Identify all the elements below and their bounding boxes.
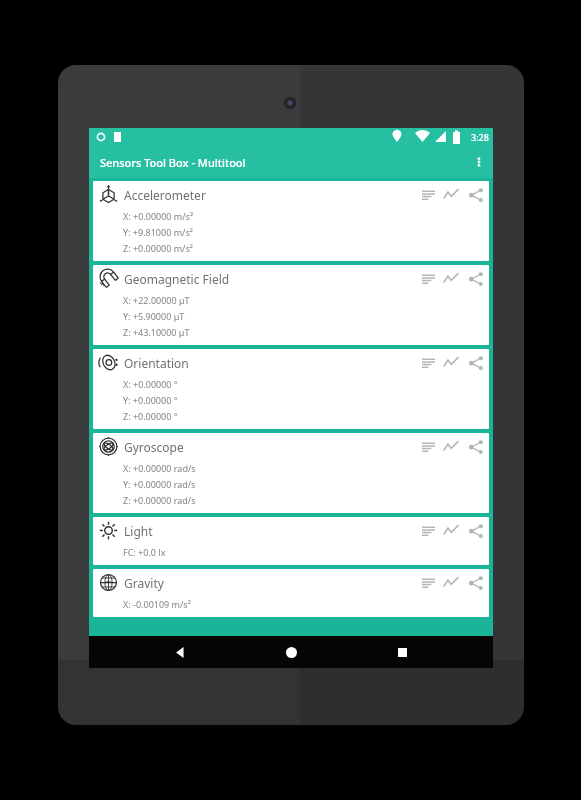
staticText: Gravity (124, 575, 164, 591)
button[interactable]: List view (417, 571, 439, 595)
button[interactable]: Share (463, 267, 489, 291)
staticText: Y: +5.90000 µT (123, 310, 185, 322)
staticText: Sensors Tool Box - Multitool (100, 155, 246, 170)
button[interactable]: Graph (439, 571, 463, 595)
staticText: X: +0.00000 rad/s (123, 462, 196, 474)
staticText: X: -0.00109 m/s² (123, 598, 191, 610)
staticText: Y: +0.00000 rad/s (123, 478, 196, 490)
button[interactable]: Graph (439, 351, 463, 375)
button[interactable]: Share (463, 183, 489, 207)
button[interactable]: Accelerometer (93, 181, 489, 261)
button[interactable]: Gyroscope (93, 433, 489, 513)
staticText: Y: +0.00000 ° (123, 394, 178, 406)
button[interactable]: More options (465, 146, 493, 178)
staticText: Y: +9.81000 m/s² (123, 226, 193, 238)
button[interactable]: List view (417, 183, 439, 207)
staticText: Z: +0.00000 m/s² (123, 242, 193, 254)
button[interactable]: Orientation (93, 349, 489, 429)
staticText: Z: +0.00000 ° (123, 410, 178, 422)
staticText: Light (124, 523, 153, 539)
staticText: Geomagnetic Field (124, 271, 230, 287)
button[interactable]: Graph (439, 435, 463, 459)
staticText: X: +0.00000 m/s² (123, 210, 194, 222)
staticText: Accelerometer (124, 187, 206, 203)
staticText: Orientation (124, 355, 189, 371)
staticText: Gyroscope (124, 439, 184, 455)
button[interactable]: List view (417, 351, 439, 375)
staticText: Z: +43.10000 µT (123, 326, 190, 338)
staticText: X: +22.00000 µT (123, 294, 190, 306)
button[interactable]: Graph (439, 183, 463, 207)
button[interactable]: Gravity (93, 569, 489, 617)
button[interactable]: Share (463, 571, 489, 595)
button[interactable]: Geomagnetic Field (93, 265, 489, 345)
button[interactable]: List view (417, 267, 439, 291)
staticText: X: +0.00000 ° (123, 378, 178, 390)
staticText: 3:28 (471, 131, 489, 143)
button[interactable]: Graph (439, 267, 463, 291)
button[interactable]: Graph (439, 519, 463, 543)
button[interactable]: List view (417, 435, 439, 459)
button[interactable]: Recent apps (382, 636, 422, 668)
button[interactable]: Share (463, 435, 489, 459)
button[interactable]: List view (417, 519, 439, 543)
button[interactable]: Back (160, 636, 200, 668)
staticText: Z: +0.00000 rad/s (123, 494, 196, 506)
staticText: FC: +0.0 lx (123, 546, 166, 558)
button[interactable]: Light (93, 517, 489, 565)
button[interactable]: Home (271, 636, 311, 668)
button[interactable]: Share (463, 519, 489, 543)
button[interactable]: Share (463, 351, 489, 375)
